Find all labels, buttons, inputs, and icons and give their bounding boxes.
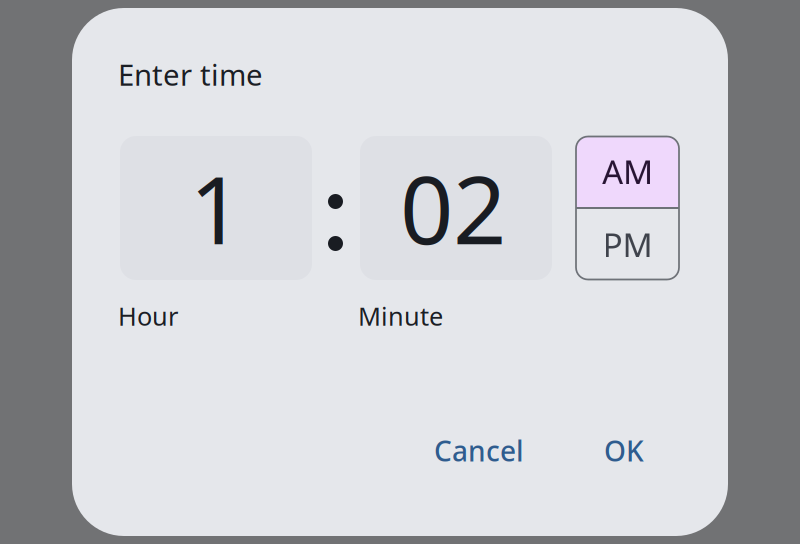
staticText: Enter time xyxy=(118,55,263,94)
staticText: Hour xyxy=(118,299,178,333)
staticText: Minute xyxy=(358,299,443,333)
staticText: OK xyxy=(604,432,644,469)
button[interactable]: OK xyxy=(588,420,660,481)
staticText: 02 xyxy=(400,146,506,270)
button[interactable]: 02 xyxy=(360,136,552,280)
button[interactable]: PM xyxy=(576,209,679,280)
button[interactable]: 1 xyxy=(120,136,312,280)
staticText: Cancel xyxy=(434,432,524,469)
staticText: PM xyxy=(602,222,652,267)
button[interactable]: Cancel xyxy=(418,420,540,481)
staticText: AM xyxy=(602,149,653,194)
button[interactable]: AM xyxy=(576,136,679,207)
staticText: 1 xyxy=(189,146,242,270)
